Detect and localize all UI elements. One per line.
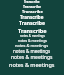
staticText: Transcribe — [20, 14, 44, 20]
staticText: notes & meetings — [13, 48, 51, 54]
staticText: notes & meetings — [20, 34, 45, 38]
staticText: notes & meetings — [11, 54, 53, 61]
staticText: notes & meetings — [18, 38, 47, 43]
staticText: Transcribe — [23, 4, 42, 9]
staticText: notes & meetings — [15, 43, 49, 48]
staticText: Transcribe — [24, 0, 40, 4]
staticText: Transcribe — [19, 20, 45, 27]
staticText: Transcribe — [22, 9, 43, 14]
staticText: Transcribe — [18, 27, 47, 34]
staticText: notes & meetings — [9, 61, 55, 68]
